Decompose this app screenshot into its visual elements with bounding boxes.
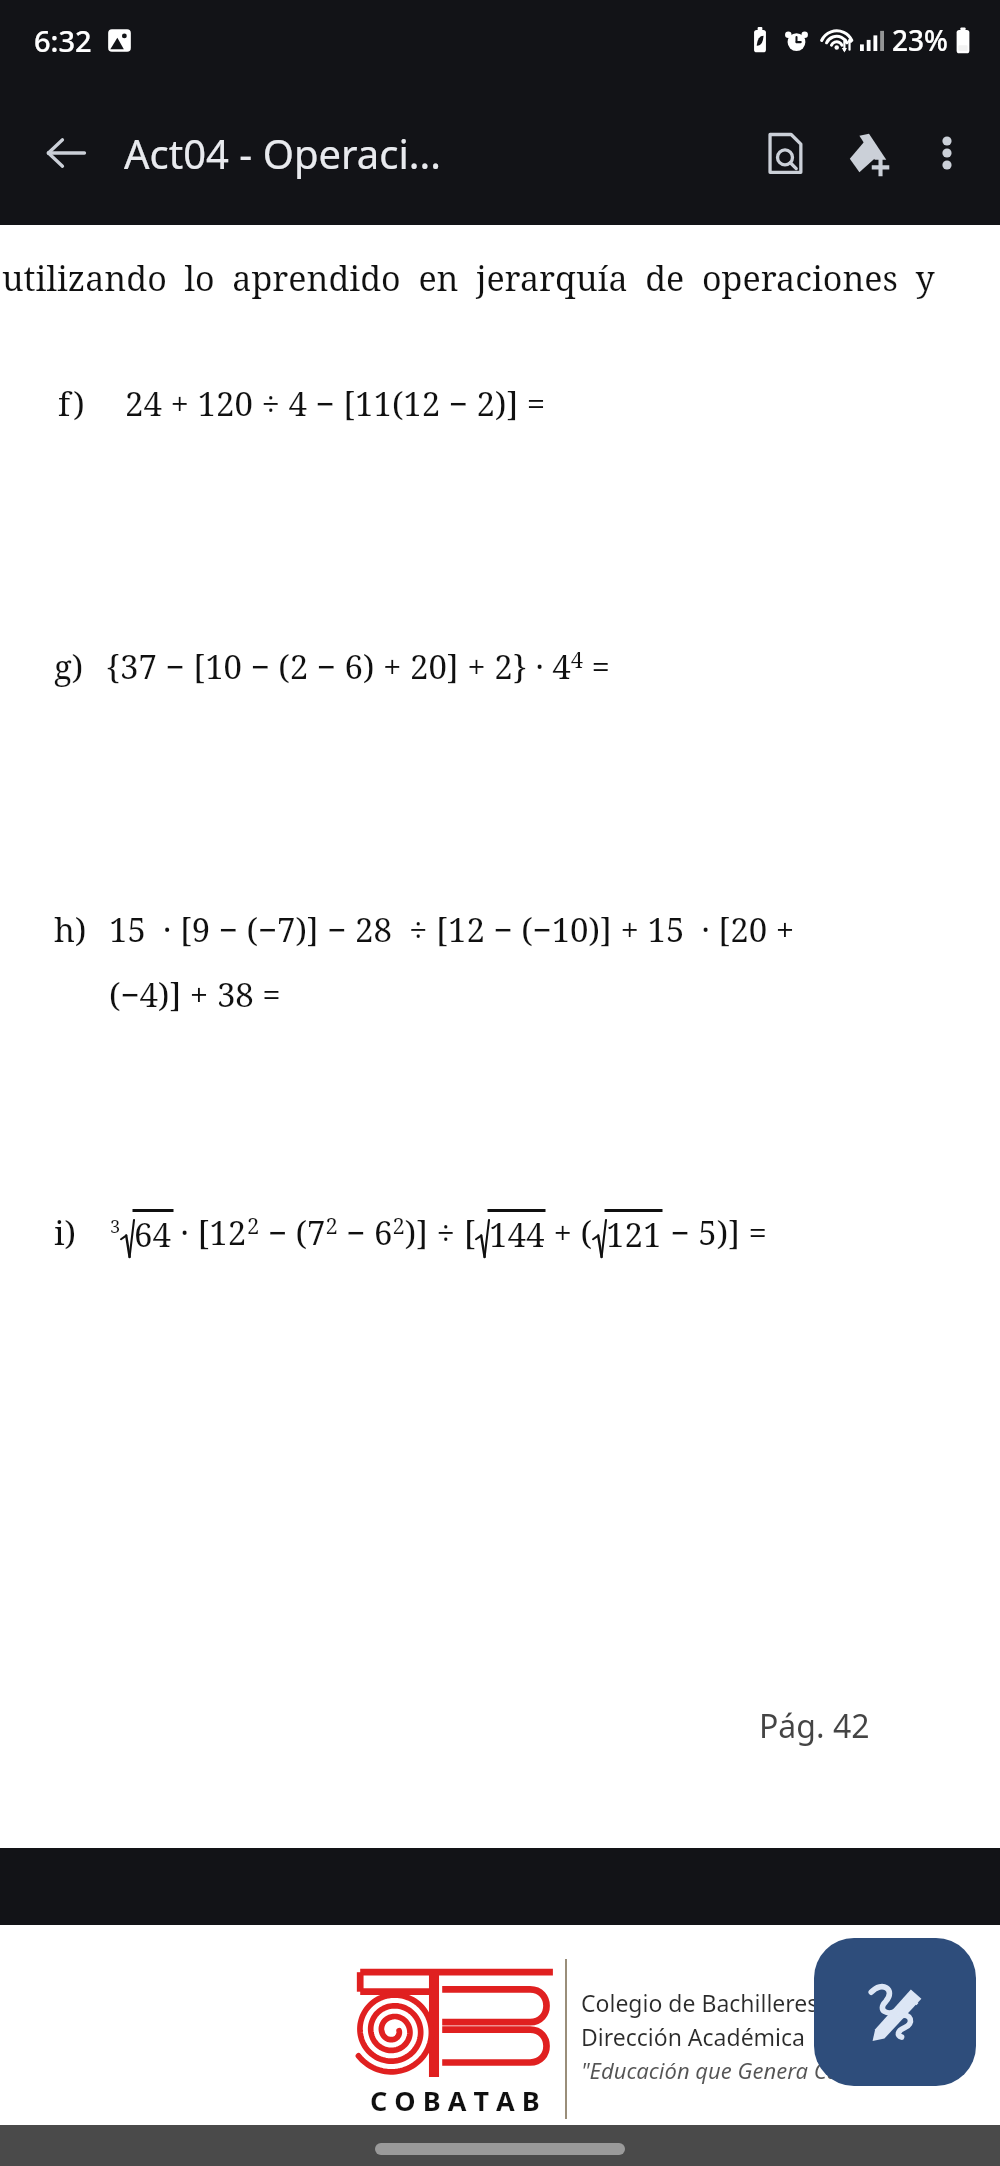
staticText: 2 − (72 − 62)] ÷ [ — [247, 1210, 476, 1255]
staticText: Colegio de Bachilleres de — [581, 1987, 852, 2018]
staticText: i) — [54, 1210, 76, 1255]
staticText: + ( — [545, 1210, 593, 1255]
staticText: h) — [54, 907, 87, 952]
staticText: (−4)] + 38 = — [109, 972, 281, 1017]
staticText: 121 — [606, 1212, 662, 1257]
staticText: 144 — [489, 1212, 545, 1257]
button[interactable]: Find in document — [750, 118, 820, 188]
staticText: g) — [54, 644, 84, 689]
staticText: C O B A T A B — [370, 2082, 540, 2119]
button[interactable]: Save to Drive — [834, 118, 904, 188]
staticText: f) — [58, 381, 85, 426]
button[interactable]: Back — [30, 117, 102, 189]
staticText: 64 — [134, 1212, 171, 1257]
staticText: utilizando lo aprendido en jerarquía de … — [2, 255, 935, 301]
staticText: {37 − [10 − (2 − 6) + 20] + 2} · 44 = — [106, 644, 611, 689]
staticText: "Educación que Genera Ca — [581, 2055, 840, 2085]
button[interactable]: More options — [914, 120, 980, 186]
staticText: Pág. 42 — [759, 1704, 870, 1748]
staticText: − 5)] = — [662, 1210, 768, 1255]
staticText: Dirección Académica — [581, 2021, 805, 2052]
staticText: 23% — [892, 21, 948, 59]
staticText: 15 · [9 − (−7)] − 28 ÷ [12 − (−10)] + 15… — [109, 907, 795, 952]
staticText: Act04 - Operaci... — [124, 126, 441, 180]
staticText: 24 + 120 ÷ 4 − [11(12 − 2)] = — [125, 381, 546, 426]
staticText: · [12 — [172, 1210, 247, 1255]
staticText: 6:32 — [34, 21, 92, 60]
staticText: 3 — [110, 1214, 121, 1239]
button[interactable]: Edit — [814, 1938, 976, 2086]
